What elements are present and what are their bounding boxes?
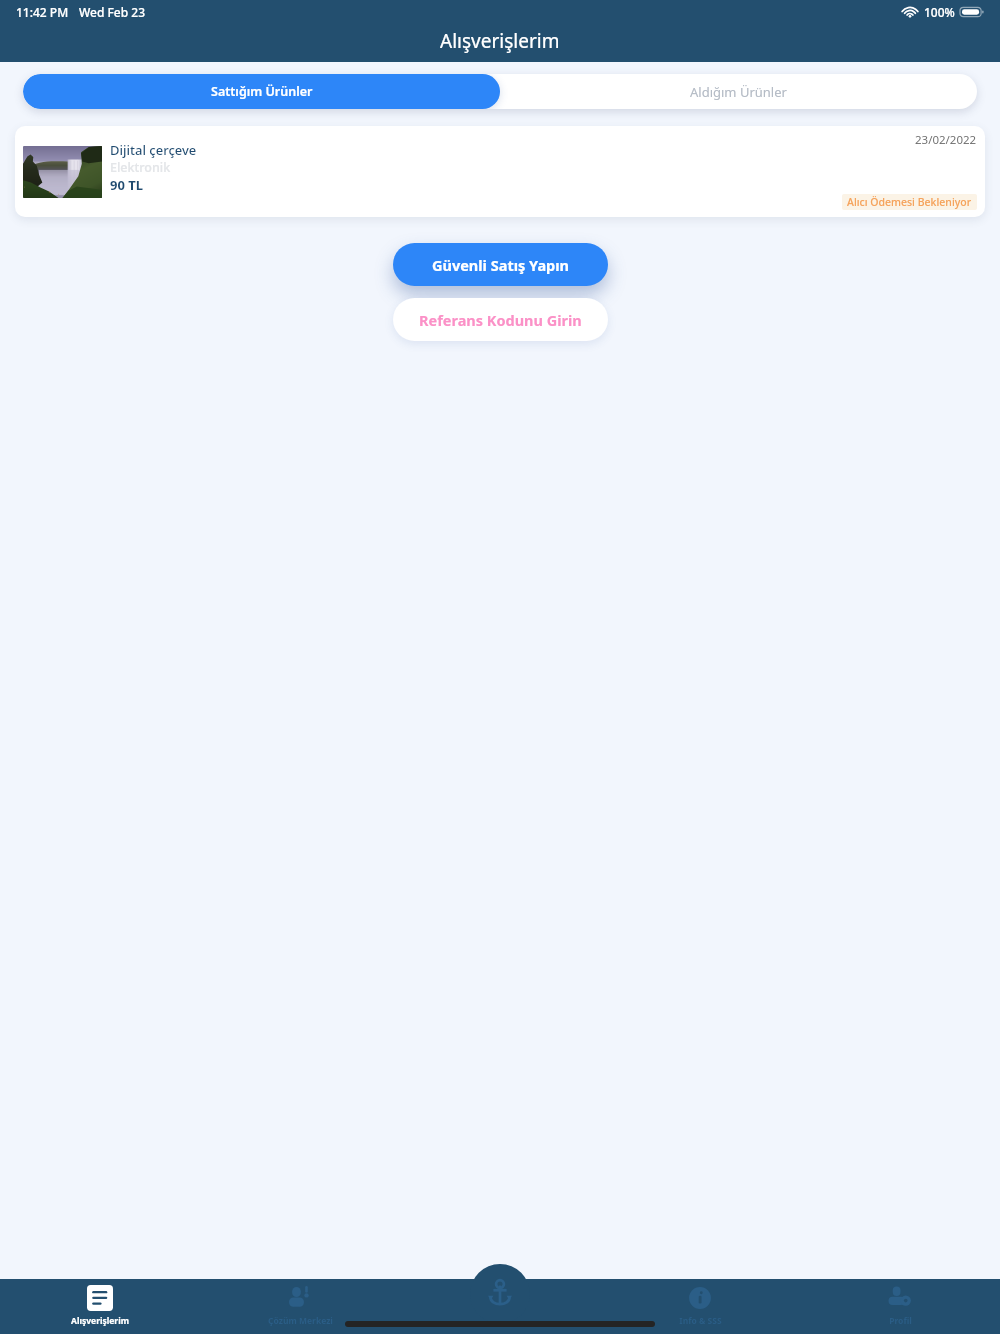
staticText: Alışverişlerim — [440, 28, 560, 54]
staticText: Güvenli Satış Yapın — [432, 255, 570, 275]
button[interactable]: Profil — [800, 1279, 1000, 1327]
button[interactable]: Aldığım Ürünler — [500, 74, 977, 109]
staticText: Profil — [889, 1315, 912, 1327]
staticText: Alıcı Ödemesi Bekleniyor — [847, 195, 972, 209]
staticText: 11:42 PM — [16, 4, 69, 20]
staticText: 23/02/2022 — [915, 132, 977, 148]
staticText: 90 TL — [110, 176, 144, 194]
button[interactable]: Info & SSS — [600, 1279, 800, 1327]
staticText: Referans Kodunu Girin — [419, 310, 582, 330]
button[interactable]: Alışverişlerim — [0, 1279, 200, 1327]
button[interactable]: Sattığım Ürünler — [23, 74, 500, 109]
button[interactable]: Referans Kodunu Girin — [393, 298, 608, 341]
staticText: Info & SSS — [679, 1315, 722, 1327]
staticText: Elektronik — [110, 159, 171, 176]
staticText: Wed Feb 23 — [79, 4, 146, 20]
staticText: Sattığım Ürünler — [211, 83, 313, 100]
staticText: Aldığım Ürünler — [690, 83, 787, 101]
staticText: Alışverişlerim — [71, 1315, 129, 1327]
staticText: 100% — [924, 4, 955, 20]
staticText: Dijital çerçeve — [110, 141, 197, 159]
button[interactable]: 23/02/2022 — [15, 126, 985, 217]
staticText: Çözüm Merkezi — [268, 1315, 333, 1327]
button[interactable]: Çözüm Merkezi — [200, 1279, 400, 1327]
button[interactable]: Güvenli Satış Yapın — [393, 243, 608, 286]
button[interactable]: Anchor — [470, 1264, 530, 1324]
